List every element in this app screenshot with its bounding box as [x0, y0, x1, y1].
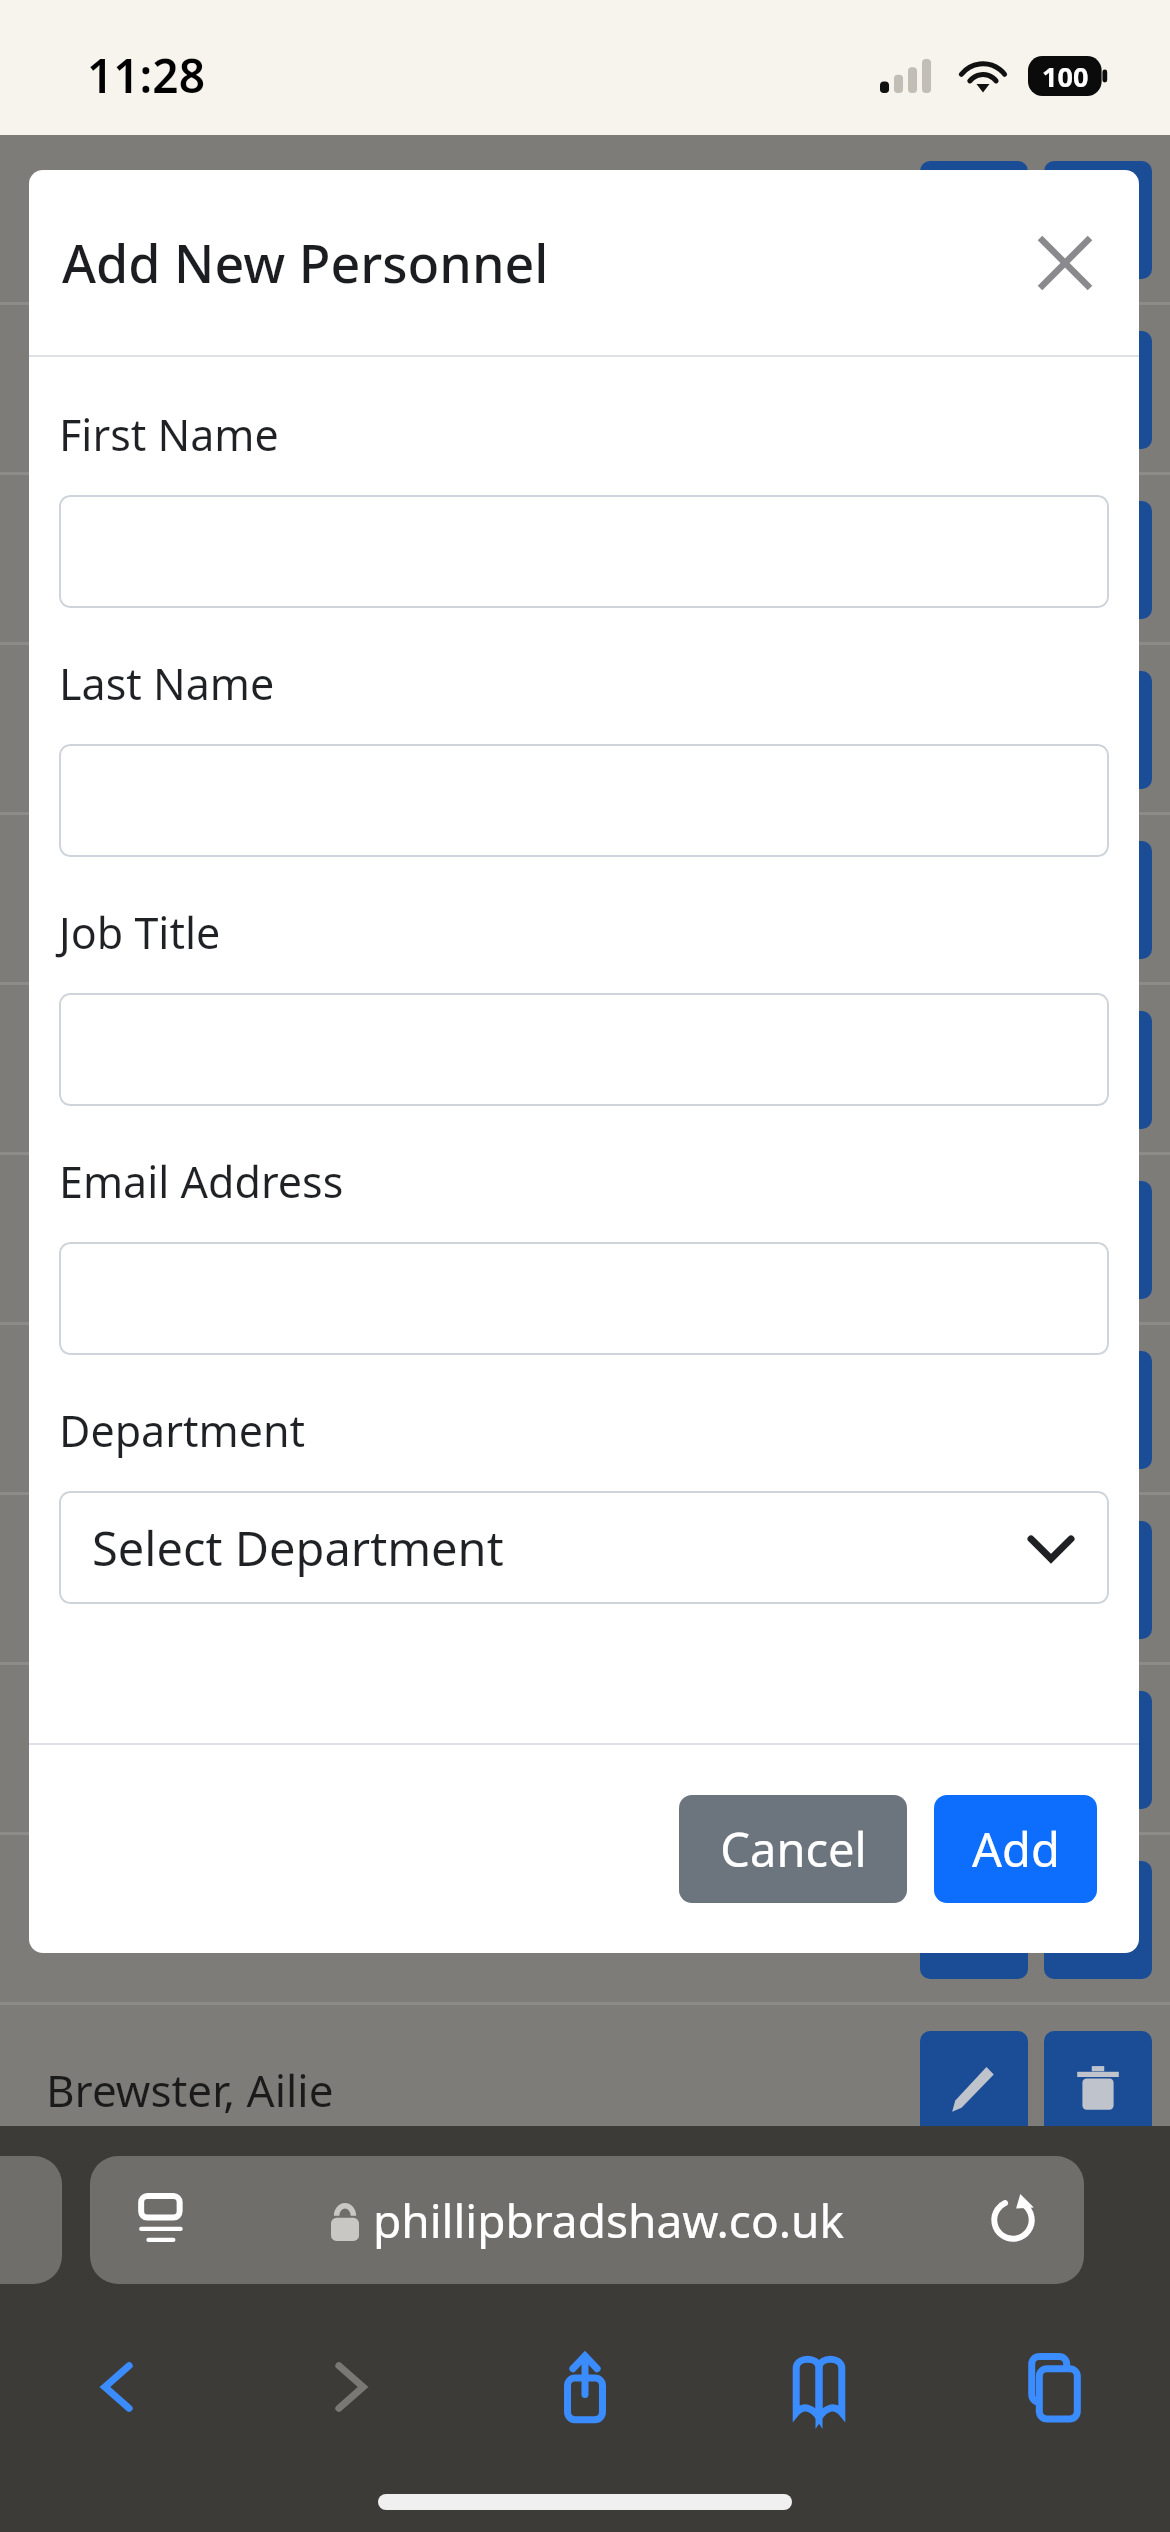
button[interactable] — [59, 993, 1109, 1106]
button[interactable]: Cancel — [679, 1795, 907, 1903]
button[interactable]: Edit — [920, 331, 1028, 449]
staticText: First Name — [59, 405, 279, 464]
button[interactable]: Reload — [982, 2189, 1044, 2251]
button[interactable]: Edit — [920, 1861, 1028, 1979]
button[interactable]: Edit — [920, 1011, 1028, 1129]
button[interactable] — [59, 744, 1109, 857]
staticText: Department — [59, 1401, 306, 1460]
button[interactable]: Edit — [920, 841, 1028, 959]
staticText: 100 — [1042, 58, 1089, 95]
button[interactable]: Delete — [1044, 671, 1152, 789]
button[interactable]: Delete — [1044, 161, 1152, 279]
button[interactable]: Add — [934, 1795, 1097, 1903]
staticText: Add — [972, 1817, 1060, 1881]
button[interactable]: Delete — [1044, 1351, 1152, 1469]
staticText: phillipbradshaw.co.uk — [373, 2189, 845, 2252]
button[interactable]: Page settings — [90, 2156, 1084, 2284]
button[interactable]: Delete — [1044, 1011, 1152, 1129]
button[interactable]: Share — [468, 2322, 702, 2452]
staticText: Select Department — [92, 1516, 504, 1580]
staticText: 11:28 — [87, 44, 205, 107]
button[interactable]: Edit — [920, 2031, 1028, 2149]
button[interactable]: Delete — [1044, 1181, 1152, 1299]
button[interactable]: Delete — [1044, 1861, 1152, 1979]
button[interactable]: Delete — [1044, 501, 1152, 619]
button[interactable] — [59, 495, 1109, 608]
staticText: Add New Personnel — [62, 227, 549, 298]
staticText: Brewster, Ailie — [46, 2060, 334, 2120]
button[interactable]: Bookmarks — [702, 2322, 936, 2452]
button[interactable]: Previous tab — [0, 2156, 62, 2284]
button[interactable]: Delete — [1044, 841, 1152, 959]
button[interactable]: Back — [0, 2322, 234, 2452]
button[interactable]: Edit — [920, 1351, 1028, 1469]
button[interactable]: Page settings — [132, 2189, 194, 2251]
button[interactable]: Edit — [920, 671, 1028, 789]
button[interactable]: Delete — [1044, 1521, 1152, 1639]
staticText: Email Address — [59, 1152, 344, 1211]
button[interactable]: Delete — [1044, 331, 1152, 449]
button[interactable]: Delete — [1044, 1691, 1152, 1809]
button[interactable]: Close — [1017, 215, 1113, 311]
staticText: Job Title — [59, 903, 221, 962]
staticText: Cancel — [720, 1817, 867, 1881]
button[interactable]: Delete — [1044, 2031, 1152, 2149]
button[interactable]: Tabs — [936, 2322, 1170, 2452]
button[interactable]: Forward — [234, 2322, 468, 2452]
button[interactable]: Edit — [920, 501, 1028, 619]
button[interactable] — [59, 1242, 1109, 1355]
button[interactable]: Select Department — [59, 1491, 1109, 1604]
button[interactable]: Edit — [920, 1181, 1028, 1299]
staticText: Last Name — [59, 654, 275, 713]
button[interactable]: Edit — [920, 1521, 1028, 1639]
button[interactable]: Edit — [920, 1691, 1028, 1809]
button[interactable]: Edit — [920, 161, 1028, 279]
